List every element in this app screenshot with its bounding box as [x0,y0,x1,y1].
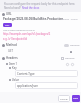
button[interactable]: Duplicate item [66,63,69,66]
button[interactable]: Item 1 [6,62,18,66]
button[interactable]: GET [3,23,12,27]
staticText: Package/2023-08-05/BuildSite-Production [3,17,64,21]
staticText: Optional [70,44,80,47]
staticText: Use a path relative to the b [3,28,35,31]
staticText: Value [12,78,19,82]
staticText: Optional [65,57,75,60]
staticText: URL [6,12,12,16]
staticText: Cancel [60,97,68,100]
staticText: GET [5,24,10,27]
button[interactable]: Method [2,43,17,47]
button[interactable]: More options [70,51,72,53]
staticText: required · string [60,18,78,21]
button[interactable]: Value [9,78,19,82]
button[interactable]: URL [2,12,12,16]
button[interactable]: Optional checkbox [61,57,75,60]
staticText: Key [12,66,17,70]
button[interactable]: application/json [15,82,78,89]
staticText: GET [8,49,13,53]
staticText: Need a hand? [4,6,22,10]
staticText: Method [6,43,17,47]
staticText: Read the docs [22,6,40,10]
staticText: Save [73,97,79,100]
button[interactable]: Optional toggle [64,44,80,47]
button[interactable]: Key [9,66,17,70]
staticText: e.g. /v1/endpoint/id [3,37,28,41]
staticText: http://example.com/api/v1/packages/2 [3,32,51,36]
staticText: Content-Type [17,72,35,76]
button[interactable]: Save [72,95,80,102]
staticText: You can configure the request body for t… [4,2,76,6]
button[interactable]: Headers [2,56,18,60]
button[interactable]: Delete item [71,63,74,66]
staticText: Headers [6,56,18,60]
staticText: Item 1 [9,62,18,66]
button[interactable]: Cancel [58,95,70,102]
button[interactable]: Content-Type [15,70,78,77]
staticText: application/json [17,84,39,88]
